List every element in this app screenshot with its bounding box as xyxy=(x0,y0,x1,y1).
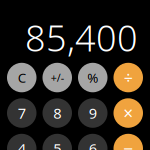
staticText: +/- xyxy=(51,70,64,85)
button[interactable]: Divide xyxy=(113,63,143,92)
staticText: 85,400 xyxy=(25,14,138,61)
button[interactable]: 4 xyxy=(7,134,36,150)
staticText: 7 xyxy=(18,103,26,123)
staticText: 5 xyxy=(53,139,61,150)
staticText: 6 xyxy=(89,139,97,150)
button[interactable]: 7 xyxy=(7,98,36,128)
staticText: ÷ xyxy=(124,67,133,88)
staticText: C xyxy=(18,69,26,86)
staticText: 4 xyxy=(18,139,26,150)
button[interactable]: 5 xyxy=(42,134,72,150)
staticText: × xyxy=(123,101,133,124)
button[interactable]: 8 xyxy=(42,98,72,128)
button[interactable]: 6 xyxy=(78,134,107,150)
staticText: % xyxy=(87,69,98,86)
button[interactable]: Toggle sign xyxy=(42,63,72,92)
button[interactable]: 9 xyxy=(78,98,107,128)
staticText: − xyxy=(123,137,133,150)
button[interactable]: Subtract xyxy=(113,134,143,150)
button[interactable]: Clear xyxy=(7,63,36,92)
staticText: 8 xyxy=(53,103,61,123)
button[interactable]: Percent xyxy=(78,63,107,92)
staticText: 9 xyxy=(89,103,97,123)
button[interactable]: Multiply xyxy=(113,98,143,128)
